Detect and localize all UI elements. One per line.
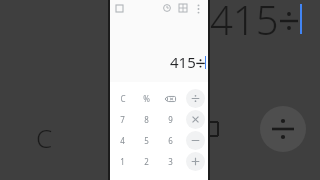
- button[interactable]: Scientific mode: [176, 1, 190, 15]
- button[interactable]: 6: [160, 130, 181, 151]
- button[interactable]: 3: [160, 151, 181, 172]
- staticText: 2: [144, 156, 149, 167]
- staticText: 4: [120, 135, 125, 146]
- button[interactable]: Divide: [186, 89, 205, 108]
- button[interactable]: %: [136, 88, 157, 109]
- staticText: 9: [168, 114, 173, 125]
- staticText: 8: [144, 114, 149, 125]
- button[interactable]: Backspace: [160, 88, 181, 109]
- button[interactable]: More options: [192, 2, 205, 15]
- button[interactable]: Expand: [113, 2, 126, 15]
- staticText: 5: [144, 135, 149, 146]
- button[interactable]: 9: [160, 109, 181, 130]
- button[interactable]: 8: [136, 109, 157, 130]
- staticText: 415: [170, 52, 196, 72]
- button[interactable]: 1: [112, 151, 133, 172]
- button[interactable]: C: [112, 88, 133, 109]
- button[interactable]: Add: [186, 152, 205, 171]
- staticText: 1: [120, 156, 125, 167]
- staticText: C: [120, 93, 126, 104]
- button[interactable]: Multiply: [186, 110, 205, 129]
- staticText: 3: [168, 156, 173, 167]
- button[interactable]: 2: [136, 151, 157, 172]
- staticText: 7: [120, 114, 125, 125]
- staticText: 6: [168, 135, 173, 146]
- button[interactable]: History: [160, 1, 174, 15]
- button[interactable]: 5: [136, 130, 157, 151]
- staticText: C: [36, 120, 53, 155]
- button[interactable]: Subtract: [186, 131, 205, 150]
- button[interactable]: 7: [112, 109, 133, 130]
- staticText: %: [143, 93, 150, 104]
- staticText: 415: [210, 0, 279, 46]
- button[interactable]: 4: [112, 130, 133, 151]
